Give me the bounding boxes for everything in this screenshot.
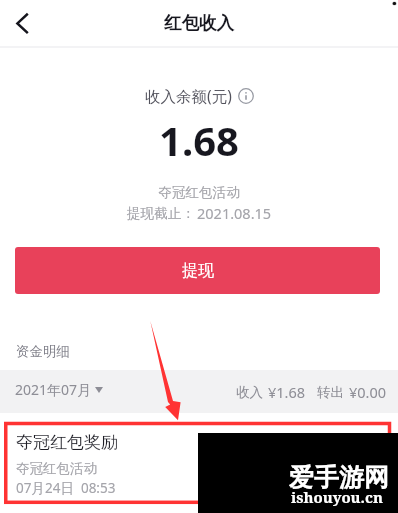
staticText: 2021年07月	[15, 380, 92, 399]
staticText: 07月24日 08:53	[16, 479, 116, 497]
staticText: 1.68	[0, 113, 398, 167]
button[interactable]: 夺冠红包奖励	[0, 425, 398, 497]
staticText: 夺冠红包活动	[16, 460, 97, 477]
staticText: ishouyou.cn	[291, 487, 383, 507]
staticText: 收入	[236, 384, 263, 401]
staticText: ¥1.68	[268, 382, 306, 402]
button[interactable]: 提现	[15, 247, 380, 294]
staticText: 资金明细	[16, 343, 70, 360]
staticText: 转出	[317, 384, 344, 401]
staticText: 夺冠红包奖励	[16, 432, 118, 453]
staticText: 爱手游网	[289, 462, 389, 493]
staticText: 收入余额(元)	[145, 85, 232, 106]
staticText: 提现	[182, 261, 214, 281]
button[interactable]: 2021年07月	[15, 380, 103, 399]
staticText: 提现截止：	[127, 205, 195, 222]
staticText: 夺冠红包活动	[0, 184, 398, 201]
button[interactable]: Back	[0, 0, 46, 46]
staticText: 红包收入	[164, 12, 234, 34]
staticText: ¥0.00	[349, 382, 387, 402]
staticText: 2021.08.15	[197, 203, 272, 223]
